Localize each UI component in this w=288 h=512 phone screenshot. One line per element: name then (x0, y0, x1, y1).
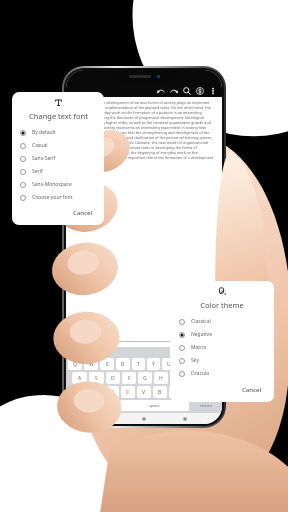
button[interactable]: Sky (179, 354, 265, 367)
staticText: F (128, 375, 131, 382)
staticText: Equally, the further development of vari… (72, 100, 216, 165)
button[interactable]: Serif (20, 165, 96, 178)
button[interactable]: J (170, 372, 184, 384)
staticText: I (183, 361, 185, 368)
button[interactable]: N (169, 386, 183, 398)
button[interactable]: Cancel (239, 384, 265, 396)
staticText: V (142, 389, 146, 396)
button[interactable]: L (202, 372, 216, 384)
button[interactable]: Dracula (179, 367, 265, 380)
button[interactable]: T (132, 358, 145, 370)
button[interactable]: Sans-Serif (20, 152, 96, 165)
staticText: Cancel (73, 209, 93, 217)
button[interactable]: Matrix (179, 341, 265, 354)
staticText: R (121, 361, 125, 368)
staticText: Q (73, 361, 77, 368)
button[interactable]: Z (89, 386, 103, 398)
staticText: By default (32, 129, 56, 136)
button[interactable]: B (153, 386, 167, 398)
staticText: Serif (32, 168, 43, 175)
button[interactable]: space (120, 400, 189, 411)
staticText: C (126, 389, 130, 396)
staticText: Sans-Monospace (32, 181, 72, 188)
button[interactable]: Redo (167, 84, 180, 97)
button[interactable]: 123 (68, 400, 84, 411)
button[interactable]: Sans-Monospace (20, 178, 96, 191)
staticText: Y (152, 361, 155, 368)
button[interactable]: Recents (182, 416, 188, 422)
button[interactable]: Search (89, 331, 217, 342)
button[interactable]: E (100, 358, 114, 370)
staticText: Classical (191, 318, 211, 325)
staticText: space (149, 403, 160, 408)
button[interactable]: Q (68, 358, 82, 370)
button[interactable]: return (191, 400, 220, 411)
staticText: Casual (32, 142, 48, 149)
button[interactable]: C (121, 386, 135, 398)
staticText: 123 (73, 403, 80, 408)
button[interactable]: U (162, 358, 175, 370)
staticText: Search (99, 331, 118, 339)
button[interactable]: Y (147, 358, 160, 370)
staticText: Z (95, 389, 98, 396)
button[interactable]: Shift (68, 386, 87, 398)
button[interactable]: Choose your font (20, 191, 96, 204)
staticText: Sans-Serif (32, 155, 56, 162)
button[interactable]: Casual (20, 139, 96, 152)
staticText: D (111, 375, 115, 382)
button[interactable]: R (116, 358, 130, 370)
button[interactable]: G (138, 372, 152, 384)
staticText: Change text font (29, 111, 88, 121)
staticText: Negative (191, 331, 212, 338)
button[interactable]: By default (20, 126, 96, 139)
button[interactable]: X (105, 386, 119, 398)
staticText: Dracula (191, 370, 210, 377)
staticText: S (95, 375, 98, 382)
button[interactable]: H (154, 372, 168, 384)
button[interactable]: Cancel (70, 207, 96, 219)
button[interactable]: Undo (154, 84, 167, 97)
button[interactable]: Close search (71, 330, 84, 343)
staticText: G (143, 375, 147, 382)
button[interactable]: A (72, 372, 87, 384)
button[interactable]: F (122, 372, 136, 384)
button[interactable]: Negative (179, 328, 265, 341)
button[interactable]: Change language (86, 400, 101, 411)
button[interactable]: I (177, 358, 190, 370)
staticText: Cancel (242, 386, 262, 394)
staticText: A (78, 375, 82, 382)
button[interactable]: S (89, 372, 104, 384)
staticText: Sky (191, 357, 199, 364)
button[interactable]: K (186, 372, 200, 384)
staticText: X (111, 389, 114, 396)
button[interactable]: V (137, 386, 151, 398)
button[interactable]: D (106, 372, 120, 384)
staticText: H (159, 375, 163, 382)
button[interactable]: Currency (193, 84, 206, 97)
staticText: T (137, 361, 140, 368)
staticText: E (106, 361, 109, 368)
button[interactable]: Search (180, 84, 193, 97)
staticText: Choose your font (32, 194, 73, 201)
staticText: U (167, 361, 171, 368)
button[interactable]: O (192, 358, 205, 370)
staticText: Color theme (200, 300, 244, 310)
staticText: B (158, 389, 162, 396)
button[interactable]: W (84, 358, 98, 370)
button[interactable]: Classical (179, 315, 265, 328)
staticText: Matrix (191, 344, 207, 351)
button[interactable]: Voice input (103, 400, 118, 411)
button[interactable]: More options (206, 84, 219, 97)
button[interactable]: Home (141, 416, 147, 422)
